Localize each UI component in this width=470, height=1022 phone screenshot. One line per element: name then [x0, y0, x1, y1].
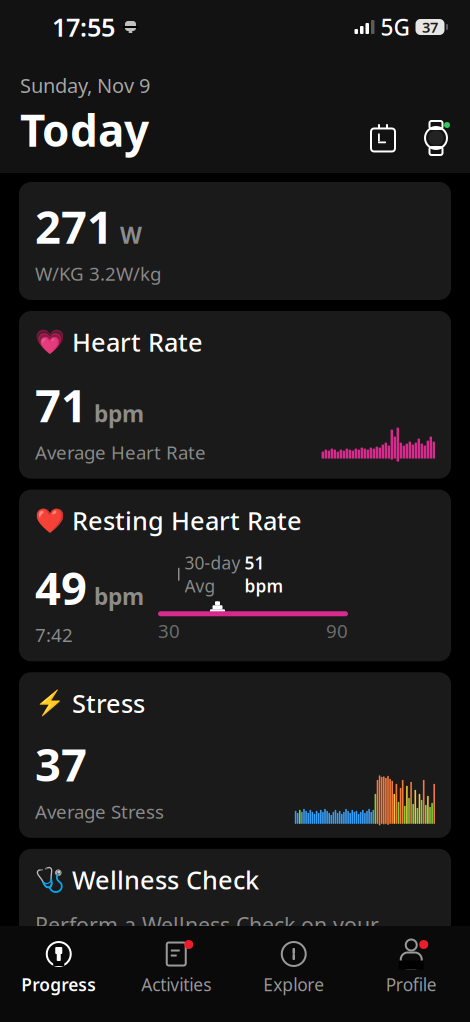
staticText: 30 — [158, 618, 180, 643]
button[interactable]: Activities — [117, 934, 235, 1002]
staticText: 71 — [35, 375, 87, 435]
staticText: Explore — [263, 973, 324, 996]
staticText: 🩺 — [35, 866, 65, 893]
staticText: Perform a Wellness Check on your watch f… — [35, 910, 379, 967]
button[interactable]: Explore — [235, 934, 352, 1002]
staticText: 271 — [35, 196, 113, 256]
staticText: bpm — [94, 398, 144, 429]
button[interactable]: Profile — [352, 934, 470, 1002]
staticText: Progress — [21, 973, 96, 996]
button[interactable]: Watch — [422, 121, 450, 155]
staticText: 37 — [422, 17, 438, 37]
staticText: ⚡ — [35, 689, 65, 717]
staticText: 17:55 — [52, 10, 115, 44]
staticText: 37 — [35, 734, 87, 794]
staticText: Wellness Check — [72, 863, 259, 896]
button[interactable]: ⚡ — [19, 672, 451, 838]
staticText: 49 — [35, 557, 87, 617]
button[interactable]: Calendar — [370, 123, 396, 153]
staticText: 7:42 — [35, 622, 73, 647]
staticText: 51 bpm — [244, 551, 283, 597]
staticText: Today — [20, 101, 149, 159]
staticText: Heart Rate — [72, 325, 203, 359]
button[interactable]: Progress — [0, 934, 117, 1002]
staticText: bpm — [94, 581, 144, 611]
staticText: Resting Heart Rate — [72, 504, 302, 537]
staticText: Average Stress — [35, 799, 164, 824]
staticText: W/KG 3.2W/kg — [35, 261, 161, 286]
staticText: 💗 — [35, 328, 65, 355]
button[interactable]: 271 — [19, 182, 451, 300]
staticText: Sunday, Nov 9 — [20, 72, 150, 99]
button[interactable]: 🩺 — [19, 849, 451, 981]
button[interactable]: ❤️ — [19, 490, 451, 661]
staticText: Profile — [386, 973, 437, 996]
staticText: Activities — [141, 973, 211, 996]
button[interactable]: 💗 — [19, 311, 451, 479]
staticText: W — [120, 220, 142, 250]
staticText: 90 — [326, 618, 348, 643]
staticText: 5G — [380, 12, 409, 42]
staticText: Average Heart Rate — [35, 440, 206, 465]
staticText: ❤️ — [35, 507, 65, 534]
staticText: Stress — [72, 686, 145, 720]
staticText: 30-day Avg — [184, 551, 240, 597]
